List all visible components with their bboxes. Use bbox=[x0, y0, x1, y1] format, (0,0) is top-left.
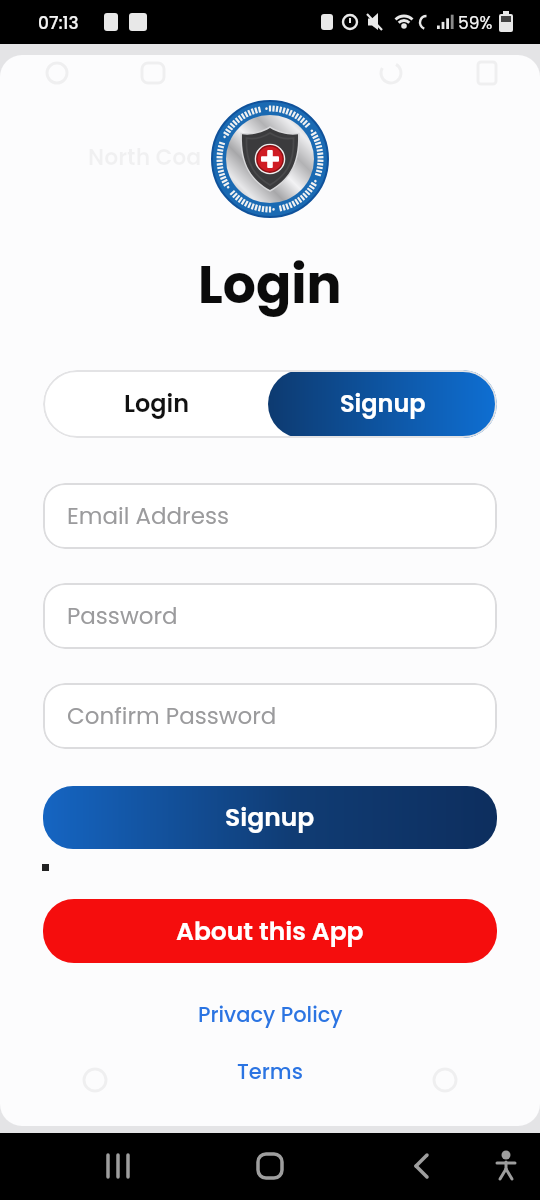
button[interactable] bbox=[180, 1133, 360, 1200]
button[interactable]: About this App bbox=[43, 899, 497, 963]
button[interactable]: Password bbox=[43, 583, 497, 649]
staticText: 07:13 bbox=[38, 11, 79, 35]
button[interactable]: Email Address bbox=[43, 483, 497, 549]
staticText: Confirm Password bbox=[67, 700, 277, 732]
button[interactable] bbox=[360, 1133, 540, 1200]
button[interactable]: Login bbox=[43, 370, 270, 438]
button[interactable]: Signup bbox=[268, 370, 497, 438]
staticText: Terms bbox=[237, 1057, 303, 1086]
staticText: About this App bbox=[176, 914, 364, 949]
staticText: Email Address bbox=[67, 500, 229, 532]
staticText: Login bbox=[198, 248, 342, 321]
staticText: Signup bbox=[340, 387, 426, 421]
button[interactable]: Confirm Password bbox=[43, 683, 497, 749]
staticText: Login bbox=[124, 387, 190, 421]
staticText: Signup bbox=[225, 800, 315, 835]
button[interactable]: Privacy Policy bbox=[194, 996, 347, 1033]
staticText: North Coa bbox=[88, 142, 202, 173]
button[interactable]: Signup bbox=[43, 786, 497, 849]
button[interactable]: Terms bbox=[233, 1053, 307, 1090]
staticText: Password bbox=[67, 600, 178, 632]
staticText: 59% bbox=[458, 11, 493, 35]
button[interactable] bbox=[0, 1133, 180, 1200]
staticText: Privacy Policy bbox=[198, 1000, 343, 1029]
